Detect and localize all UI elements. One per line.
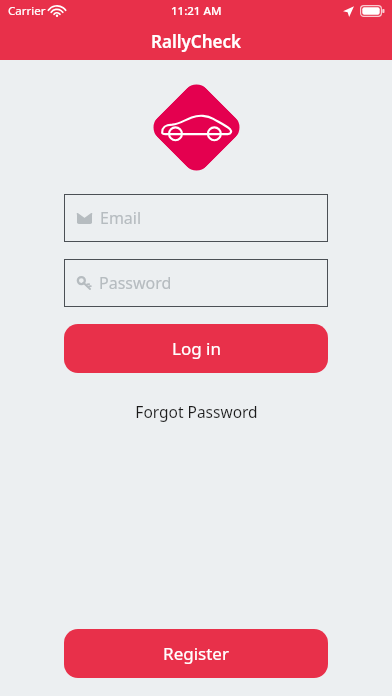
button[interactable]: Register bbox=[64, 629, 328, 678]
staticText: Forgot Password bbox=[135, 401, 258, 422]
other: Battery bbox=[360, 5, 385, 17]
staticText: Register bbox=[163, 642, 229, 665]
other: Location bbox=[343, 6, 354, 17]
staticText: 11:21 AM bbox=[171, 3, 222, 19]
staticText: RallyCheck bbox=[151, 30, 241, 53]
staticText: Carrier bbox=[8, 3, 46, 19]
button[interactable]: Log in bbox=[64, 324, 328, 373]
staticText: Log in bbox=[172, 337, 221, 360]
other: Password bbox=[77, 276, 91, 290]
button[interactable]: Forgot Password bbox=[125, 396, 268, 427]
staticText: Email bbox=[100, 207, 142, 229]
button[interactable]: Password bbox=[64, 259, 328, 307]
staticText: Password bbox=[99, 272, 172, 294]
button[interactable]: Email bbox=[64, 194, 328, 242]
other: Email bbox=[77, 213, 92, 224]
